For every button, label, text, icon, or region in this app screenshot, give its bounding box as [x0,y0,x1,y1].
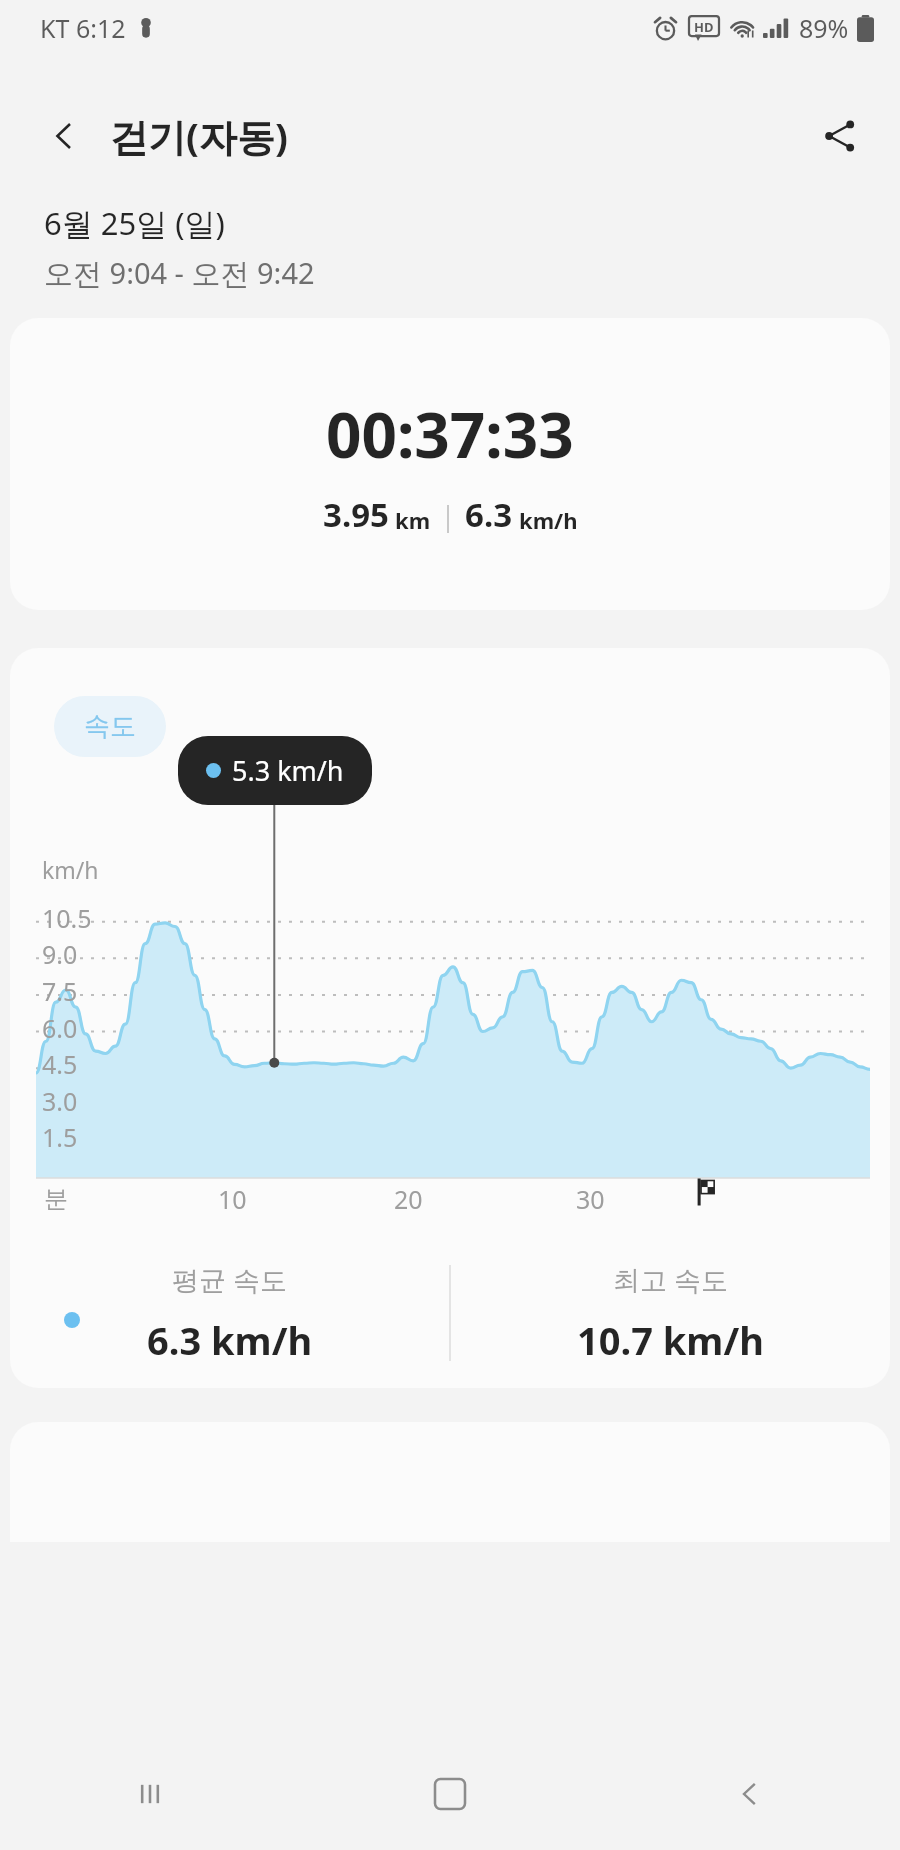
staticText: 오전 9:04 - 오전 9:42 [44,253,315,293]
staticText: 00:37:33 [326,392,574,476]
button[interactable]: 평균 속도 [10,1238,449,1388]
staticText: 1.5 [42,1120,78,1154]
other: Finish [694,1176,726,1208]
staticText: 10.5 [42,901,92,935]
staticText: 5.3 km/h [232,752,344,789]
staticText: 6.3 km/h [147,1314,313,1366]
staticText: 10.7 km/h [577,1314,764,1366]
button[interactable]: Recent apps [0,1738,300,1850]
staticText: HD [694,18,714,36]
staticText: 평균 속도 [172,1261,288,1298]
staticText: 7.5 [42,974,78,1008]
staticText: 6.0 [42,1011,78,1045]
staticText: 3.95 [323,492,389,537]
staticText: 6월 25일 (일) [44,202,225,244]
button[interactable]: 최고 속도 [451,1238,890,1388]
button[interactable]: 속도 [54,696,166,757]
staticText: 30 [576,1182,605,1216]
button[interactable]: Share [802,98,878,174]
staticText: 걷기(자동) [110,110,288,162]
staticText: km/h [42,854,99,885]
staticText: 4.5 [42,1047,78,1081]
button[interactable]: 00:37:33 [10,318,890,610]
staticText: 3.0 [42,1084,78,1118]
staticText: 속도 [84,710,136,743]
staticText: km [395,505,431,535]
staticText: 89% [799,11,849,45]
staticText: 9.0 [42,937,78,971]
button[interactable]: Back [28,100,100,172]
staticText: 20 [394,1182,423,1216]
button[interactable]: 5.3 km/h [178,736,372,805]
staticText: km/h [519,505,578,535]
staticText: 분 [44,1184,68,1214]
staticText: 최고 속도 [613,1261,729,1298]
staticText: KT 6:12 [40,11,126,45]
button[interactable]: Back [600,1738,900,1850]
staticText: 10 [218,1182,247,1216]
staticText: 6.3 [465,492,513,537]
button[interactable]: Home [300,1738,600,1850]
